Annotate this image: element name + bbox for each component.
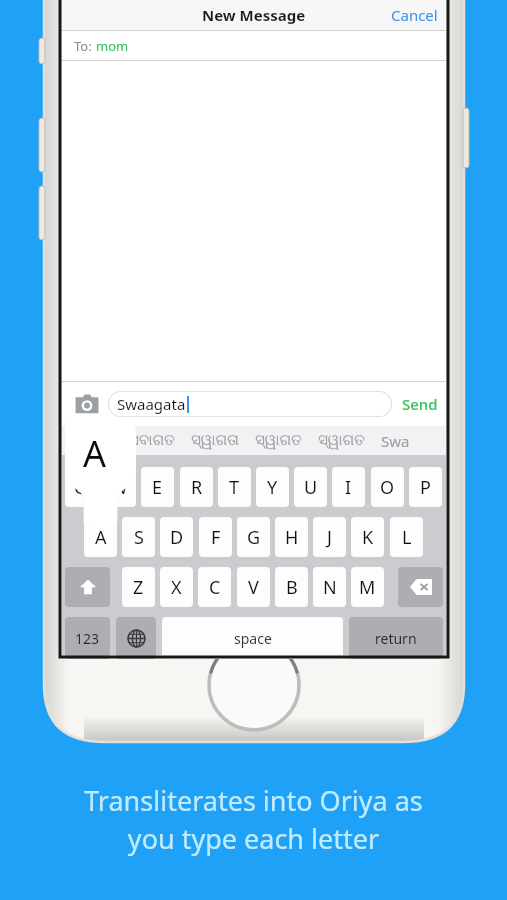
button[interactable]: N [313, 567, 346, 607]
staticText: W [111, 475, 128, 500]
button[interactable]: T [218, 467, 251, 507]
button[interactable]: ସବାଗତ [122, 430, 182, 451]
button[interactable]: X [160, 567, 193, 607]
staticText: V [248, 575, 259, 600]
button[interactable]: E [141, 467, 174, 507]
button[interactable]: return [349, 617, 443, 659]
staticText: Transliterates into Oriya as you type ea… [84, 782, 423, 857]
button[interactable]: Z [122, 567, 155, 607]
staticText: B [286, 575, 298, 600]
staticText: Send [402, 394, 438, 414]
button[interactable]: To: [62, 31, 446, 60]
staticText: mom [96, 37, 129, 55]
staticText: Z [133, 575, 144, 600]
button[interactable]: C [198, 567, 231, 607]
staticText: M [359, 575, 376, 600]
staticText: space [234, 629, 272, 648]
staticText: A [83, 429, 107, 478]
staticText: T [229, 475, 240, 500]
button[interactable]: space [162, 617, 343, 659]
button[interactable]: Shift [65, 567, 110, 607]
button[interactable]: R [180, 467, 213, 507]
button[interactable]: Y [256, 467, 289, 507]
button[interactable]: B [275, 567, 308, 607]
button[interactable]: ସ୍ୱାଗତ [68, 428, 120, 454]
staticText: ସ୍ୱାଗତ [318, 433, 365, 448]
staticText: Cancel [391, 5, 438, 25]
staticText: Swaagata [117, 394, 186, 414]
button[interactable]: U [294, 467, 327, 507]
button[interactable]: Send [398, 388, 442, 420]
button[interactable]: Switch keyboard [116, 617, 156, 659]
staticText: G [247, 525, 261, 550]
button[interactable]: ସ୍ୱାଗତା [184, 430, 246, 451]
button[interactable]: Cancel [383, 1, 446, 29]
button[interactable]: M [351, 567, 384, 607]
button[interactable]: P [409, 467, 442, 507]
staticText: N [323, 575, 337, 600]
staticText: F [211, 525, 221, 550]
staticText: ସ୍ୱାଗତା [191, 433, 239, 448]
button[interactable]: D [160, 517, 193, 557]
button[interactable]: O [371, 467, 404, 507]
staticText: D [170, 525, 184, 550]
staticText: A [95, 525, 107, 550]
button[interactable]: Swa [374, 428, 417, 454]
button[interactable]: J [313, 517, 346, 557]
button[interactable]: ସ୍ୱାଗତ [248, 430, 309, 451]
button[interactable]: F [199, 517, 232, 557]
staticText: R [191, 475, 203, 500]
button[interactable]: Camera [70, 387, 104, 421]
staticText: To: [74, 37, 96, 55]
staticText: X [171, 575, 182, 600]
staticText: J [327, 525, 332, 550]
staticText: P [420, 475, 431, 500]
button[interactable]: Swaagata [108, 391, 392, 417]
staticText: Q [74, 475, 89, 500]
button[interactable]: H [275, 517, 308, 557]
button[interactable]: S [122, 517, 155, 557]
staticText: U [304, 475, 318, 500]
button[interactable]: K [351, 517, 384, 557]
button[interactable]: A [84, 517, 117, 557]
button[interactable]: G [237, 517, 270, 557]
staticText: C [209, 575, 221, 600]
button[interactable]: I [332, 467, 365, 507]
button[interactable]: V [237, 567, 270, 607]
staticText: K [362, 525, 374, 550]
staticText: Y [267, 475, 278, 500]
staticText: ସବାଗତ [129, 433, 175, 448]
staticText: New Message [202, 5, 306, 25]
staticText: L [402, 525, 412, 550]
staticText: I [345, 475, 352, 500]
button[interactable]: L [390, 517, 423, 557]
button[interactable]: W [103, 467, 136, 507]
staticText: ସ୍ୱାଗତ [75, 431, 113, 451]
staticText: ସ୍ୱାଗତ [255, 433, 302, 448]
button[interactable]: 123 [65, 617, 110, 659]
staticText: O [380, 475, 395, 500]
staticText: Swa [381, 431, 410, 451]
button[interactable]: Q [65, 467, 98, 507]
button[interactable]: Backspace [398, 567, 443, 607]
staticText: H [285, 525, 299, 550]
button[interactable]: ସ୍ୱାଗତ [311, 430, 372, 451]
staticText: return [375, 629, 417, 648]
staticText: E [152, 475, 163, 500]
staticText: S [134, 525, 144, 550]
staticText: 123 [75, 629, 100, 648]
